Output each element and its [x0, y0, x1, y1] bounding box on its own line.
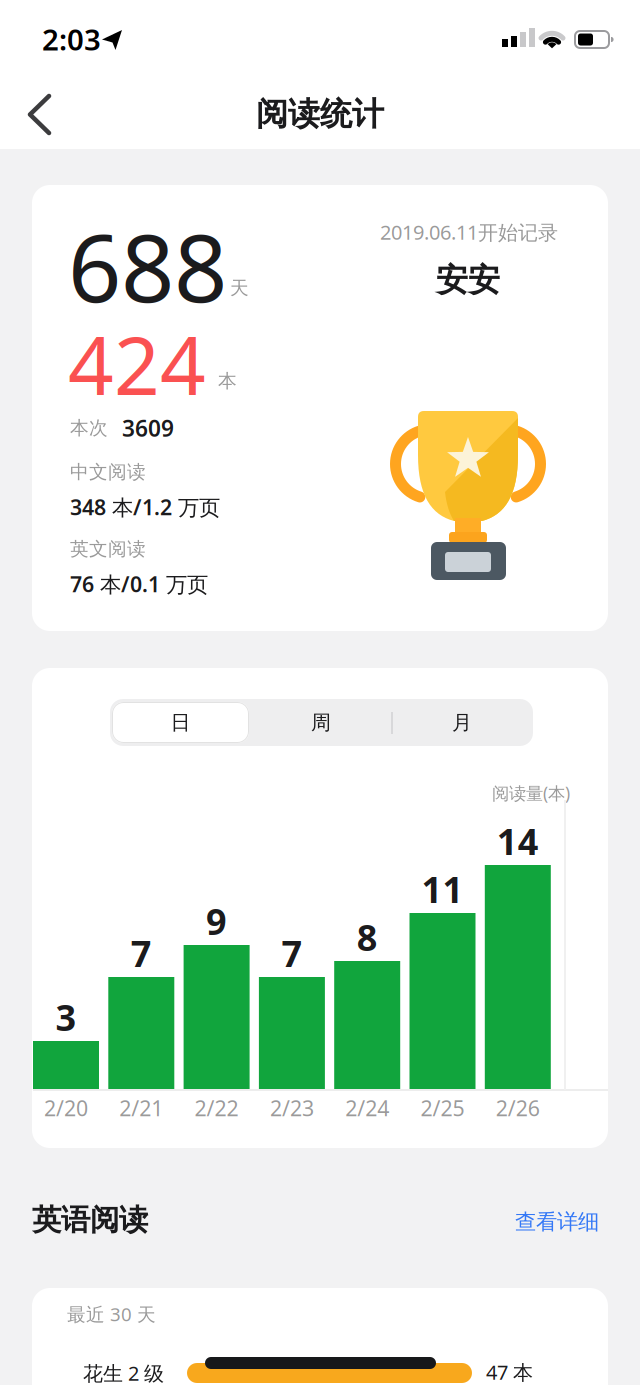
staticText: 阅读统计 [256, 94, 384, 134]
staticText: 2/22 [195, 1094, 239, 1122]
staticText: 本 [218, 369, 237, 392]
staticText: 76 本/0.1 万页 [70, 570, 208, 598]
button[interactable]: 查看详细 [502, 1200, 612, 1244]
staticText: 47 本 [486, 1359, 533, 1385]
staticText: 最近 30 天 [67, 1302, 156, 1326]
button[interactable]: 日 [112, 702, 249, 743]
staticText: 2/25 [420, 1094, 464, 1122]
button[interactable]: 周 [252, 699, 390, 746]
staticText: 14 [497, 817, 539, 865]
staticText: 424 [68, 311, 206, 417]
staticText: 2/23 [270, 1094, 314, 1122]
staticText: 2019.06.11开始记录 [380, 219, 558, 245]
staticText: 7 [131, 929, 152, 977]
staticText: 3609 [122, 413, 174, 443]
staticText: 8 [357, 913, 378, 961]
staticText: 7 [281, 929, 302, 977]
staticText: 2/24 [345, 1094, 389, 1122]
staticText: 月 [452, 710, 472, 735]
staticText: 花生 2 级 [83, 1360, 164, 1385]
staticText: 安安 [436, 260, 500, 300]
staticText: 英文阅读 [70, 537, 146, 560]
staticText: 天 [230, 276, 249, 299]
staticText: 阅读量(本) [492, 781, 570, 804]
staticText: 11 [421, 865, 463, 913]
staticText: 2/21 [119, 1094, 163, 1122]
staticText: 688 [68, 204, 227, 328]
staticText: 周 [311, 710, 331, 735]
staticText: 中文阅读 [70, 460, 146, 483]
staticText: 查看详细 [515, 1209, 599, 1235]
staticText: 日 [170, 710, 190, 735]
staticText: 2/26 [496, 1094, 540, 1122]
button[interactable]: 月 [393, 699, 531, 746]
staticText: 2/20 [44, 1094, 88, 1122]
staticText: 9 [206, 897, 227, 945]
staticText: 3 [55, 993, 76, 1041]
staticText: 348 本/1.2 万页 [70, 493, 220, 521]
button[interactable]: Back [10, 90, 70, 139]
button[interactable]: 花生 2 级 [83, 1343, 573, 1385]
staticText: 英语阅读 [32, 1202, 148, 1238]
staticText: 本次 [70, 416, 108, 439]
staticText: 2:03 [42, 19, 101, 58]
